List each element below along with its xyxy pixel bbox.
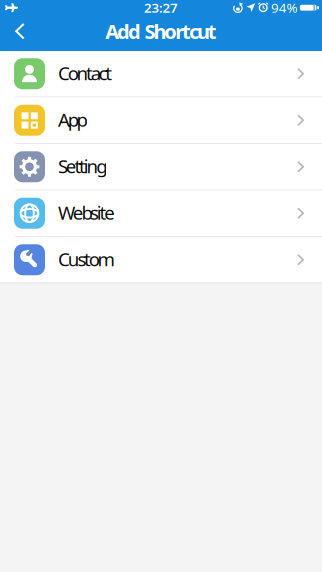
- staticText: App: [58, 107, 87, 132]
- button[interactable]: [0, 23, 25, 39]
- staticText: Custom: [58, 247, 114, 271]
- staticText: 94%: [271, 0, 297, 16]
- staticText: Setting: [58, 154, 107, 178]
- button[interactable]: Website: [0, 190, 322, 237]
- staticText: Shortcut: [144, 18, 217, 44]
- staticText: Contact: [58, 61, 112, 85]
- button[interactable]: Custom: [0, 237, 322, 283]
- staticText: 23:27: [144, 0, 178, 16]
- button[interactable]: Setting: [0, 144, 322, 190]
- button[interactable]: App: [0, 97, 322, 144]
- staticText: Add: [105, 18, 141, 44]
- button[interactable]: Contact: [0, 51, 322, 97]
- staticText: Website: [58, 200, 115, 225]
